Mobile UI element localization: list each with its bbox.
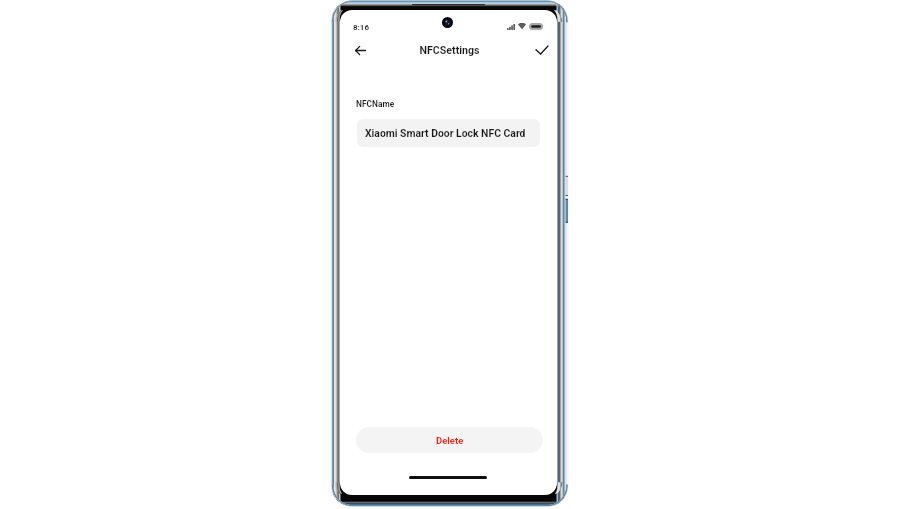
staticText: Delete: [436, 435, 464, 446]
button[interactable]: Back: [348, 36, 372, 64]
button[interactable]: Xiaomi Smart Door Lock NFC Card: [357, 119, 540, 147]
button[interactable]: Confirm: [530, 36, 554, 64]
staticText: NFCSettings: [419, 44, 480, 56]
staticText: Xiaomi Smart Door Lock NFC Card: [365, 127, 526, 139]
staticText: NFCName: [356, 99, 395, 109]
staticText: 8:16: [353, 23, 370, 32]
button[interactable]: Delete: [356, 427, 543, 453]
